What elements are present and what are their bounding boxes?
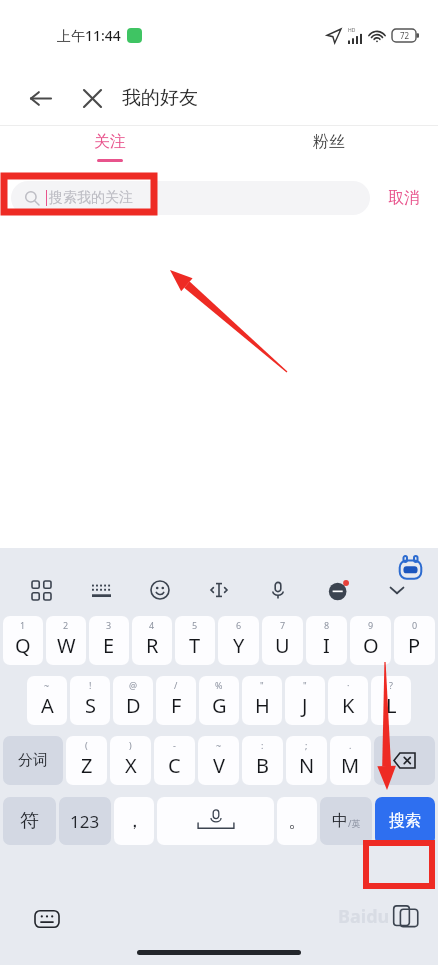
button[interactable]: Backspace — [374, 736, 435, 785]
button[interactable]: ! — [70, 676, 110, 725]
staticText: B — [256, 752, 269, 779]
button[interactable]: . — [330, 736, 371, 785]
staticText: 123 — [70, 810, 100, 833]
staticText: D — [126, 692, 141, 719]
staticText: ( — [85, 739, 88, 751]
staticText: W — [57, 632, 76, 659]
button[interactable]: ， — [114, 797, 154, 845]
staticText: ; — [305, 739, 308, 751]
button[interactable]: 4 — [132, 616, 172, 665]
staticText: " — [303, 679, 307, 691]
staticText: X — [125, 752, 137, 779]
staticText: 8 — [324, 619, 330, 631]
staticText: 72 — [400, 30, 410, 41]
button[interactable]: - — [154, 736, 195, 785]
button[interactable]: Space — [157, 797, 274, 845]
button[interactable]: ? — [371, 676, 411, 725]
staticText: @ — [129, 679, 138, 691]
staticText: 搜索我的关注 — [49, 189, 133, 207]
button[interactable]: 3 — [89, 616, 129, 665]
button[interactable]: 0 — [394, 616, 435, 665]
staticText: G — [212, 692, 227, 719]
staticText: 4 — [149, 619, 155, 631]
button[interactable]: Emoji — [142, 572, 178, 608]
staticText: 中 — [332, 811, 348, 831]
button[interactable]: 。 — [277, 797, 317, 845]
button[interactable]: Voice input — [260, 572, 296, 608]
staticText: 取消 — [388, 188, 420, 208]
button[interactable]: 搜索 — [375, 797, 435, 845]
staticText: 搜索 — [389, 811, 421, 831]
button[interactable]: @ — [113, 676, 153, 725]
button[interactable]: / — [156, 676, 196, 725]
staticText: M — [341, 752, 360, 779]
button[interactable]: 搜索我的关注 — [11, 181, 370, 215]
staticText: Q — [15, 632, 31, 659]
staticText: 7 — [280, 619, 286, 631]
button[interactable]: ; — [286, 736, 327, 785]
button[interactable]: 5 — [175, 616, 215, 665]
staticText: 上午11:44 — [57, 26, 121, 45]
button[interactable]: Edit text — [201, 572, 237, 608]
staticText: / — [174, 679, 178, 691]
staticText: Z — [81, 752, 93, 779]
button[interactable]: 粉丝 — [219, 126, 438, 174]
staticText: : — [261, 739, 264, 751]
button[interactable]: Switch keyboard — [32, 904, 62, 934]
button[interactable]: 6 — [218, 616, 259, 665]
button[interactable]: " — [285, 676, 325, 725]
button[interactable]: ~ — [198, 736, 239, 785]
staticText: ? — [389, 679, 393, 691]
button[interactable]: Close — [72, 78, 112, 118]
button[interactable]: : — [242, 736, 283, 785]
staticText: 3 — [106, 619, 112, 631]
staticText: ~ — [44, 679, 50, 691]
staticText: I — [323, 632, 330, 659]
button[interactable]: % — [199, 676, 239, 725]
staticText: H — [255, 692, 270, 719]
button[interactable]: Assistant — [394, 552, 426, 584]
button[interactable]: ) — [110, 736, 151, 785]
button[interactable]: 取消 — [384, 182, 424, 214]
staticText: ， — [125, 809, 144, 833]
staticText: /英 — [348, 817, 361, 829]
staticText: T — [189, 632, 201, 659]
staticText: L — [386, 692, 397, 719]
button[interactable]: Stickers — [320, 572, 356, 608]
button[interactable]: ~ — [27, 676, 67, 725]
button[interactable]: Hide keyboard — [379, 572, 415, 608]
button[interactable]: · — [328, 676, 368, 725]
button[interactable]: 关注 — [0, 126, 219, 174]
staticText: R — [146, 632, 159, 659]
button[interactable]: 中 — [320, 797, 372, 845]
button[interactable]: 符 — [3, 797, 56, 845]
button[interactable]: 9 — [350, 616, 391, 665]
button[interactable]: Apps — [23, 572, 59, 608]
staticText: U — [275, 632, 290, 659]
button[interactable]: 分词 — [3, 736, 63, 785]
staticText: · — [347, 679, 350, 691]
staticText: 2 — [63, 619, 69, 631]
staticText: J — [302, 692, 308, 719]
staticText: - — [173, 739, 176, 751]
staticText: 我的好友 — [122, 86, 198, 110]
staticText: Baidu — [338, 904, 390, 929]
staticText: ~ — [216, 739, 222, 751]
button[interactable]: 8 — [306, 616, 347, 665]
staticText: N — [299, 752, 315, 779]
button[interactable]: 1 — [3, 616, 43, 665]
staticText: 粉丝 — [313, 132, 345, 152]
button[interactable]: " — [242, 676, 282, 725]
staticText: 6 — [236, 619, 242, 631]
staticText: 关注 — [94, 132, 126, 152]
button[interactable]: 123 — [59, 797, 111, 845]
button[interactable]: Keyboard layout — [83, 572, 119, 608]
staticText: ) — [129, 739, 132, 751]
staticText: ! — [89, 679, 92, 691]
staticText: 0 — [412, 619, 418, 631]
staticText: O — [363, 632, 379, 659]
button[interactable]: ( — [66, 736, 107, 785]
button[interactable]: Back — [20, 78, 60, 118]
button[interactable]: 7 — [262, 616, 303, 665]
button[interactable]: 2 — [46, 616, 86, 665]
